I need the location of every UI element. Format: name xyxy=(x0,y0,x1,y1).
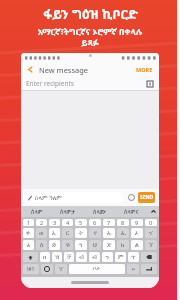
staticText: ሰላምና xyxy=(124,208,139,215)
staticText: 1 xyxy=(27,219,31,226)
staticText: ጅ xyxy=(107,242,112,248)
staticText: ሰላም xyxy=(31,208,43,215)
button[interactable]: ፍ xyxy=(62,240,73,250)
button[interactable]: ሰላም xyxy=(21,206,52,217)
staticText: New message xyxy=(39,65,89,75)
button[interactable]: Language xyxy=(55,264,67,274)
button[interactable]: ሰላሙ xyxy=(83,206,115,217)
staticText: ኘ xyxy=(149,242,153,248)
button[interactable]: Attach xyxy=(24,192,124,203)
staticText: ። xyxy=(132,266,135,272)
button[interactable]: ት xyxy=(75,228,87,238)
staticText: 9 xyxy=(135,219,139,226)
staticText: የ xyxy=(94,230,97,236)
button[interactable]: ል xyxy=(131,240,143,250)
staticText: 0 xyxy=(149,219,153,226)
staticText: ኤ xyxy=(52,230,57,236)
button[interactable]: 5 xyxy=(75,219,87,226)
button[interactable]: Enter recipients xyxy=(21,77,159,90)
button[interactable]: የ xyxy=(89,228,101,238)
button[interactable]: Back xyxy=(25,64,36,75)
button[interactable]: ኢ xyxy=(117,228,129,238)
staticText: ኦ xyxy=(135,230,139,236)
button[interactable]: ስ xyxy=(36,240,47,250)
button[interactable]: ኤ xyxy=(49,228,60,238)
button[interactable]: 2 xyxy=(36,219,47,226)
button[interactable]: ጅ xyxy=(103,240,115,250)
button[interactable]: ሰላምና xyxy=(115,206,147,217)
button[interactable]: SEND xyxy=(138,192,155,203)
button[interactable]: ድ xyxy=(49,240,60,250)
button[interactable]: 7 xyxy=(103,219,115,226)
button[interactable]: ር xyxy=(62,228,73,238)
button[interactable]: ግ xyxy=(75,240,87,250)
staticText: 7 xyxy=(107,219,111,226)
staticText: 6 xyxy=(93,219,97,226)
button[interactable]: Enter xyxy=(141,264,157,274)
button[interactable]: ን xyxy=(102,252,113,262)
button[interactable]: Emoji xyxy=(127,193,136,202)
button[interactable]: ኡ xyxy=(103,228,115,238)
staticText: 8 xyxy=(121,219,125,226)
button[interactable]: MORE xyxy=(134,66,155,73)
button[interactable]: አ xyxy=(23,240,34,250)
button[interactable]: 6 xyxy=(89,219,101,226)
button[interactable]: ወ xyxy=(36,228,47,238)
button[interactable]: ክ xyxy=(117,240,129,250)
button[interactable]: ሰላምታ xyxy=(52,206,83,217)
staticText: ፕ xyxy=(59,266,64,272)
staticText: ፐ xyxy=(149,230,154,236)
button[interactable]: 8 xyxy=(117,219,129,226)
staticText: MORE xyxy=(136,66,153,73)
button[interactable]: Shift xyxy=(23,252,38,262)
staticText: አ xyxy=(27,242,31,248)
staticText: !#1 xyxy=(27,266,35,273)
staticText: ች xyxy=(67,254,72,260)
button[interactable]: 0 xyxy=(145,219,157,226)
button[interactable]: ኽ xyxy=(52,252,62,262)
button[interactable]: ኘ xyxy=(145,240,157,250)
staticText: ኢ xyxy=(121,230,126,236)
button[interactable]: Period xyxy=(127,264,139,274)
staticText: ቦታ xyxy=(93,266,101,272)
staticText: አማርኛ፣ትግርኛና ኦሮምኛ በቀላሉ ይጻፉ xyxy=(8,26,172,48)
staticText: ብ xyxy=(92,254,97,260)
staticText: ወ xyxy=(39,230,44,236)
staticText: ቭ xyxy=(79,254,84,260)
button[interactable]: ም xyxy=(115,252,126,262)
staticText: ፍ xyxy=(66,242,70,248)
button[interactable]: 9 xyxy=(131,219,143,226)
button[interactable]: 4 xyxy=(62,219,73,226)
staticText: ዘ xyxy=(43,254,47,260)
button[interactable]: ቀ xyxy=(23,228,34,238)
staticText: ም xyxy=(118,254,124,260)
staticText: Enter recipients xyxy=(26,79,74,88)
staticText: ሰላም ዓለም xyxy=(35,194,62,202)
staticText: ሰላሙ xyxy=(93,208,106,215)
button[interactable]: ቭ xyxy=(76,252,87,262)
button[interactable]: ፐ xyxy=(145,228,157,238)
staticText: ግ xyxy=(79,242,83,248)
button[interactable]: ቦታ xyxy=(69,264,125,274)
button[interactable]: ች xyxy=(64,252,74,262)
staticText: ሰላምታ xyxy=(60,208,75,215)
button[interactable]: Home xyxy=(71,281,109,284)
button[interactable]: ጥ xyxy=(128,252,139,262)
button[interactable]: Add contact xyxy=(146,80,154,88)
staticText: ኽ xyxy=(55,254,60,260)
button[interactable]: ኦ xyxy=(131,228,143,238)
button[interactable]: ዘ xyxy=(40,252,50,262)
button[interactable]: ህ xyxy=(89,240,101,250)
staticText: 5 xyxy=(79,219,83,226)
button[interactable]: 1 xyxy=(23,219,34,226)
button[interactable]: ብ xyxy=(89,252,100,262)
button[interactable]: 3 xyxy=(49,219,60,226)
staticText: ን xyxy=(106,254,110,260)
staticText: SEND xyxy=(140,194,154,201)
button[interactable]: Symbols xyxy=(23,264,39,274)
staticText: 3 xyxy=(53,219,57,226)
staticText: ስ xyxy=(40,242,44,248)
button[interactable]: Backspace xyxy=(141,252,157,262)
button[interactable]: Emoji keyboard xyxy=(41,264,53,274)
button[interactable]: Expand suggestions xyxy=(147,206,159,217)
